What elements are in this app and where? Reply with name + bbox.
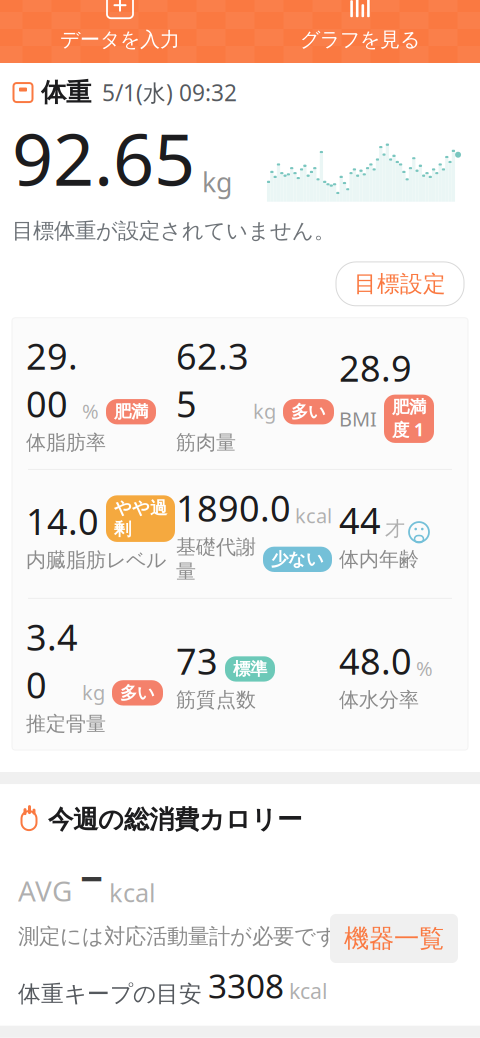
staticText: 推定骨量 <box>26 711 106 736</box>
staticText: 肥満 <box>114 401 148 422</box>
staticText: kcal <box>289 976 328 1005</box>
staticText: 体重 <box>41 77 91 108</box>
staticText: 内臓脂肪レベル <box>26 548 166 572</box>
staticText: AVG <box>18 872 72 909</box>
staticText: 多い <box>120 682 155 703</box>
staticText: 肥満度 1 <box>392 397 426 441</box>
staticText: kg <box>253 398 276 424</box>
staticText: 目標体重が設定されていません。 <box>12 218 335 244</box>
staticText: 29.00 <box>26 332 78 427</box>
staticText: 体水分率 <box>339 688 419 712</box>
staticText: kcal <box>109 876 156 909</box>
staticText: 筋質点数 <box>176 688 256 712</box>
staticText: 機器一覧 <box>344 923 444 954</box>
staticText: 少ない <box>271 549 324 570</box>
staticText: 92.65 <box>12 110 195 206</box>
staticText: 3.40 <box>26 613 78 708</box>
staticText: 筋肉量 <box>176 430 236 455</box>
staticText: BMI <box>339 405 377 432</box>
staticText: 体脂肪率 <box>26 430 106 455</box>
staticText: やや過剰 <box>114 497 167 540</box>
staticText: 目標設定 <box>354 270 446 298</box>
staticText: 62.35 <box>176 332 249 427</box>
staticText: 44 <box>339 496 381 544</box>
staticText: 標準 <box>233 658 267 680</box>
button[interactable]: データを入力 <box>0 0 240 59</box>
staticText: 3308 <box>208 963 284 1008</box>
staticText: 73 <box>176 637 218 685</box>
button[interactable]: 機器一覧 <box>330 914 458 963</box>
staticText: 5/1(水) 09:32 <box>102 77 237 108</box>
staticText: 1890.0 <box>176 484 291 532</box>
staticText: kg <box>202 164 232 200</box>
staticText: データを入力 <box>60 27 180 52</box>
staticText: − <box>80 851 103 904</box>
staticText: 48.0 <box>339 637 412 685</box>
staticText: 体重キープの目安 <box>18 980 202 1008</box>
staticText: 14.0 <box>26 497 99 545</box>
staticText: kg <box>82 679 105 705</box>
button[interactable]: グラフを見る <box>240 0 480 59</box>
staticText: % <box>82 398 99 424</box>
staticText: kcal <box>295 502 332 529</box>
staticText: 今週の総消費カロリー <box>48 804 302 835</box>
staticText: グラフを見る <box>300 27 420 52</box>
staticText: 才 <box>385 516 405 541</box>
button[interactable]: 目標設定 <box>336 262 464 306</box>
staticText: % <box>416 655 433 682</box>
staticText: 基礎代謝量 <box>176 535 256 584</box>
staticText: 多い <box>291 401 326 422</box>
staticText: 28.9 <box>339 344 412 392</box>
staticText: 測定には対応活動量計が必要です。 <box>18 923 359 949</box>
staticText: 体内年齢 <box>339 547 419 572</box>
